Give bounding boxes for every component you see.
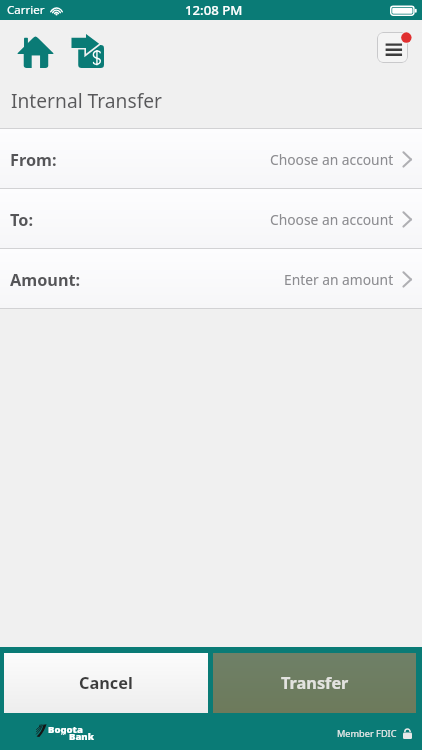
button[interactable]: From: [0,129,422,188]
button[interactable]: Amount: [0,249,422,308]
staticText: To: [10,209,34,231]
button[interactable]: Home [13,31,58,72]
staticText: Cancel [79,672,133,694]
button[interactable]: Menu [371,26,412,67]
staticText: From: [10,149,57,171]
button[interactable]: To: [0,189,422,248]
staticText: 12:08 PM [185,1,243,19]
staticText: Bank [69,730,94,743]
button[interactable]: Transfer money [66,31,108,72]
staticText: Enter an amount [284,270,394,289]
staticText: Internal Transfer [11,87,163,113]
staticText: Carrier [7,2,45,18]
staticText: Transfer [281,672,349,694]
button[interactable]: Cancel [4,653,208,713]
staticText: Choose an account [270,210,394,229]
staticText: Member FDIC [337,727,397,740]
button[interactable]: Transfer [213,653,416,713]
staticText: Choose an account [270,150,394,169]
staticText: Amount: [10,269,81,291]
staticText: Savings [55,731,78,739]
staticText: Bogota [48,723,83,736]
